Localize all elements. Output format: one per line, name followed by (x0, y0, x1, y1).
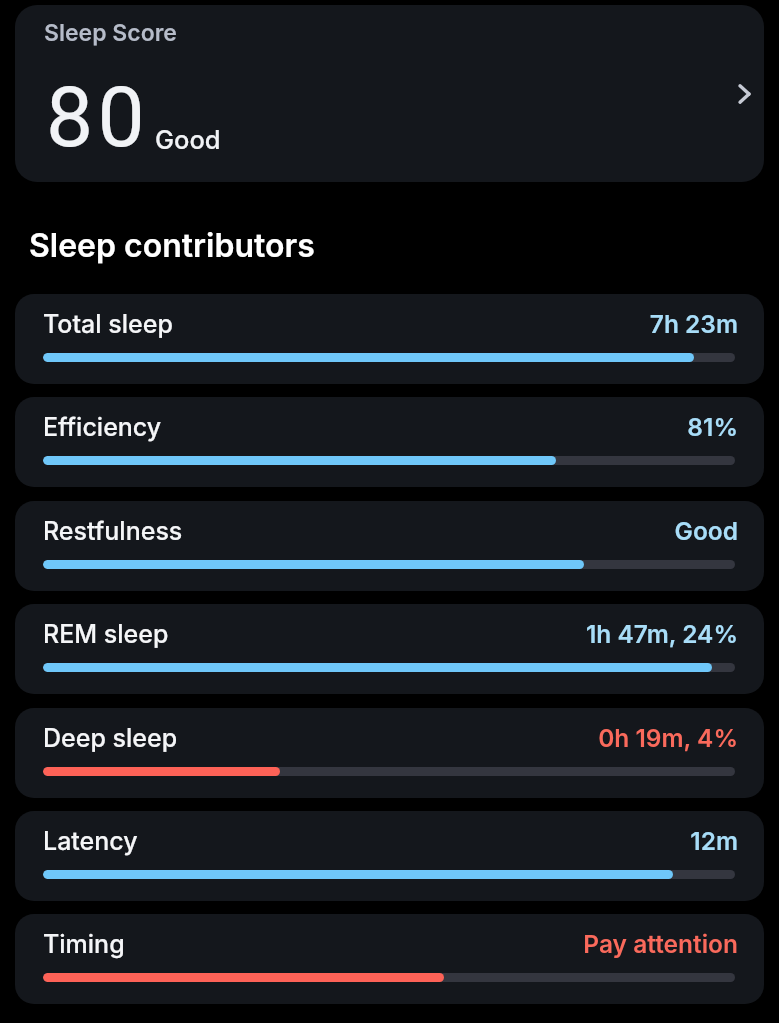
staticText: Pay attention (583, 929, 738, 959)
staticText: 0h 19m, 4% (598, 723, 738, 753)
staticText: Restfulness (43, 516, 183, 546)
button[interactable]: Total sleep (15, 294, 764, 384)
staticText: 12m (690, 826, 738, 856)
button[interactable]: Deep sleep (15, 708, 764, 798)
staticText: 1h 47m, 24% (585, 619, 738, 649)
staticText: Timing (43, 929, 125, 959)
staticText: 7h 23m (649, 309, 738, 339)
button[interactable]: Restfulness (15, 501, 764, 591)
staticText: Sleep Score (44, 19, 177, 47)
button[interactable]: Timing (15, 914, 764, 1004)
staticText: Sleep contributors (29, 226, 315, 265)
staticText: Total sleep (43, 309, 173, 339)
button[interactable]: Open sleep score details (717, 72, 761, 116)
staticText: Latency (43, 826, 138, 856)
staticText: 80 (46, 68, 149, 166)
staticText: Deep sleep (43, 723, 178, 753)
staticText: Good (674, 516, 738, 546)
button[interactable]: REM sleep (15, 604, 764, 694)
staticText: Good (155, 124, 221, 155)
staticText: Efficiency (43, 412, 162, 442)
button[interactable]: Efficiency (15, 397, 764, 487)
staticText: 81% (687, 412, 738, 442)
button[interactable]: Latency (15, 811, 764, 901)
button[interactable]: Sleep Score (15, 5, 764, 182)
staticText: REM sleep (43, 619, 169, 649)
